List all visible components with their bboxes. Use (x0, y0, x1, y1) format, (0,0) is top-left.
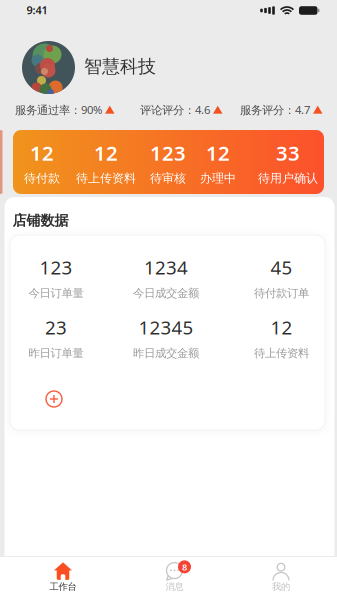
staticText: 智慧科技 (84, 55, 156, 78)
staticText: 待付款订单 (254, 286, 309, 300)
button[interactable]: 12 (200, 139, 236, 186)
staticText: 服务通过率：90% (15, 102, 102, 117)
staticText: 办理中 (200, 171, 236, 186)
staticText: 33 (276, 139, 300, 167)
staticText: 待付款 (24, 171, 60, 186)
staticText: 12 (270, 315, 292, 340)
staticText: 9:41 (26, 2, 47, 17)
staticText: 评论评分：4.6 (140, 102, 210, 117)
staticText: 12 (30, 139, 54, 167)
staticText: 我的 (272, 581, 290, 592)
staticText: 工作台 (49, 581, 76, 592)
staticText: 45 (270, 255, 292, 280)
button[interactable]: 添加 (46, 391, 62, 407)
button[interactable]: 8 (124, 556, 224, 598)
staticText: 23 (45, 315, 67, 340)
button[interactable]: 我的 (231, 556, 331, 598)
staticText: 待上传资料 (76, 171, 136, 186)
button[interactable]: 智慧科技 (22, 41, 156, 94)
staticText: 123 (39, 255, 72, 280)
staticText: 店铺数据 (12, 212, 68, 229)
staticText: 123 (150, 139, 186, 167)
staticText: 12 (94, 139, 118, 167)
button[interactable]: 12 (24, 139, 60, 186)
staticText: 12345 (138, 315, 193, 340)
staticText: 8 (182, 560, 187, 573)
staticText: 今日订单量 (28, 286, 83, 300)
staticText: 昨日成交金额 (133, 346, 199, 360)
button[interactable]: 工作台 (13, 556, 113, 598)
staticText: 1234 (144, 255, 188, 280)
staticText: 今日成交金额 (133, 286, 199, 300)
staticText: 待用户确认 (258, 171, 318, 186)
staticText: 12 (206, 139, 230, 167)
button[interactable]: 12 (76, 139, 136, 186)
button[interactable]: 33 (258, 139, 318, 186)
staticText: 待上传资料 (254, 346, 309, 360)
button[interactable]: 123 (150, 139, 186, 186)
staticText: 服务评分：4.7 (240, 102, 310, 117)
staticText: 待审核 (150, 171, 186, 186)
staticText: 消息 (165, 581, 183, 592)
staticText: 昨日订单量 (28, 346, 83, 360)
